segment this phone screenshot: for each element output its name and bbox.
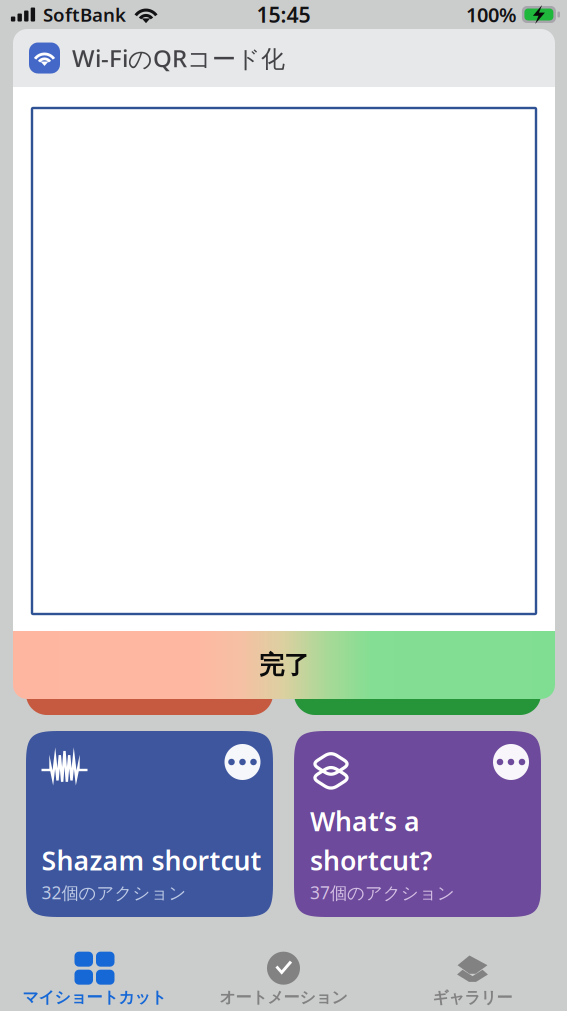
staticText: 32個のアクション <box>41 881 186 904</box>
staticText: ギャラリー <box>432 988 512 1008</box>
staticText: shortcut? <box>310 843 432 878</box>
button[interactable]: What’s a <box>294 731 541 917</box>
button[interactable]: マイショートカット <box>0 921 189 1007</box>
staticText: オートメーション <box>219 988 347 1007</box>
staticText: 37個のアクション <box>310 881 455 904</box>
staticText: What’s a <box>310 803 420 839</box>
button[interactable]: オートメーション <box>189 921 378 1007</box>
staticText: 100% <box>466 1 517 28</box>
staticText: 完了 <box>259 649 309 680</box>
button[interactable]: More options <box>493 744 529 780</box>
staticText: Shazam shortcut <box>41 843 261 878</box>
staticText: Wi-FiのQRコード化 <box>72 42 285 74</box>
button[interactable]: More options <box>224 744 260 780</box>
staticText: マイショートカット <box>22 988 166 1007</box>
button[interactable]: ギャラリー <box>378 920 567 1008</box>
staticText: SoftBank <box>43 2 126 27</box>
staticText: 15:45 <box>256 0 310 29</box>
button[interactable]: Shazam shortcut <box>26 731 273 917</box>
